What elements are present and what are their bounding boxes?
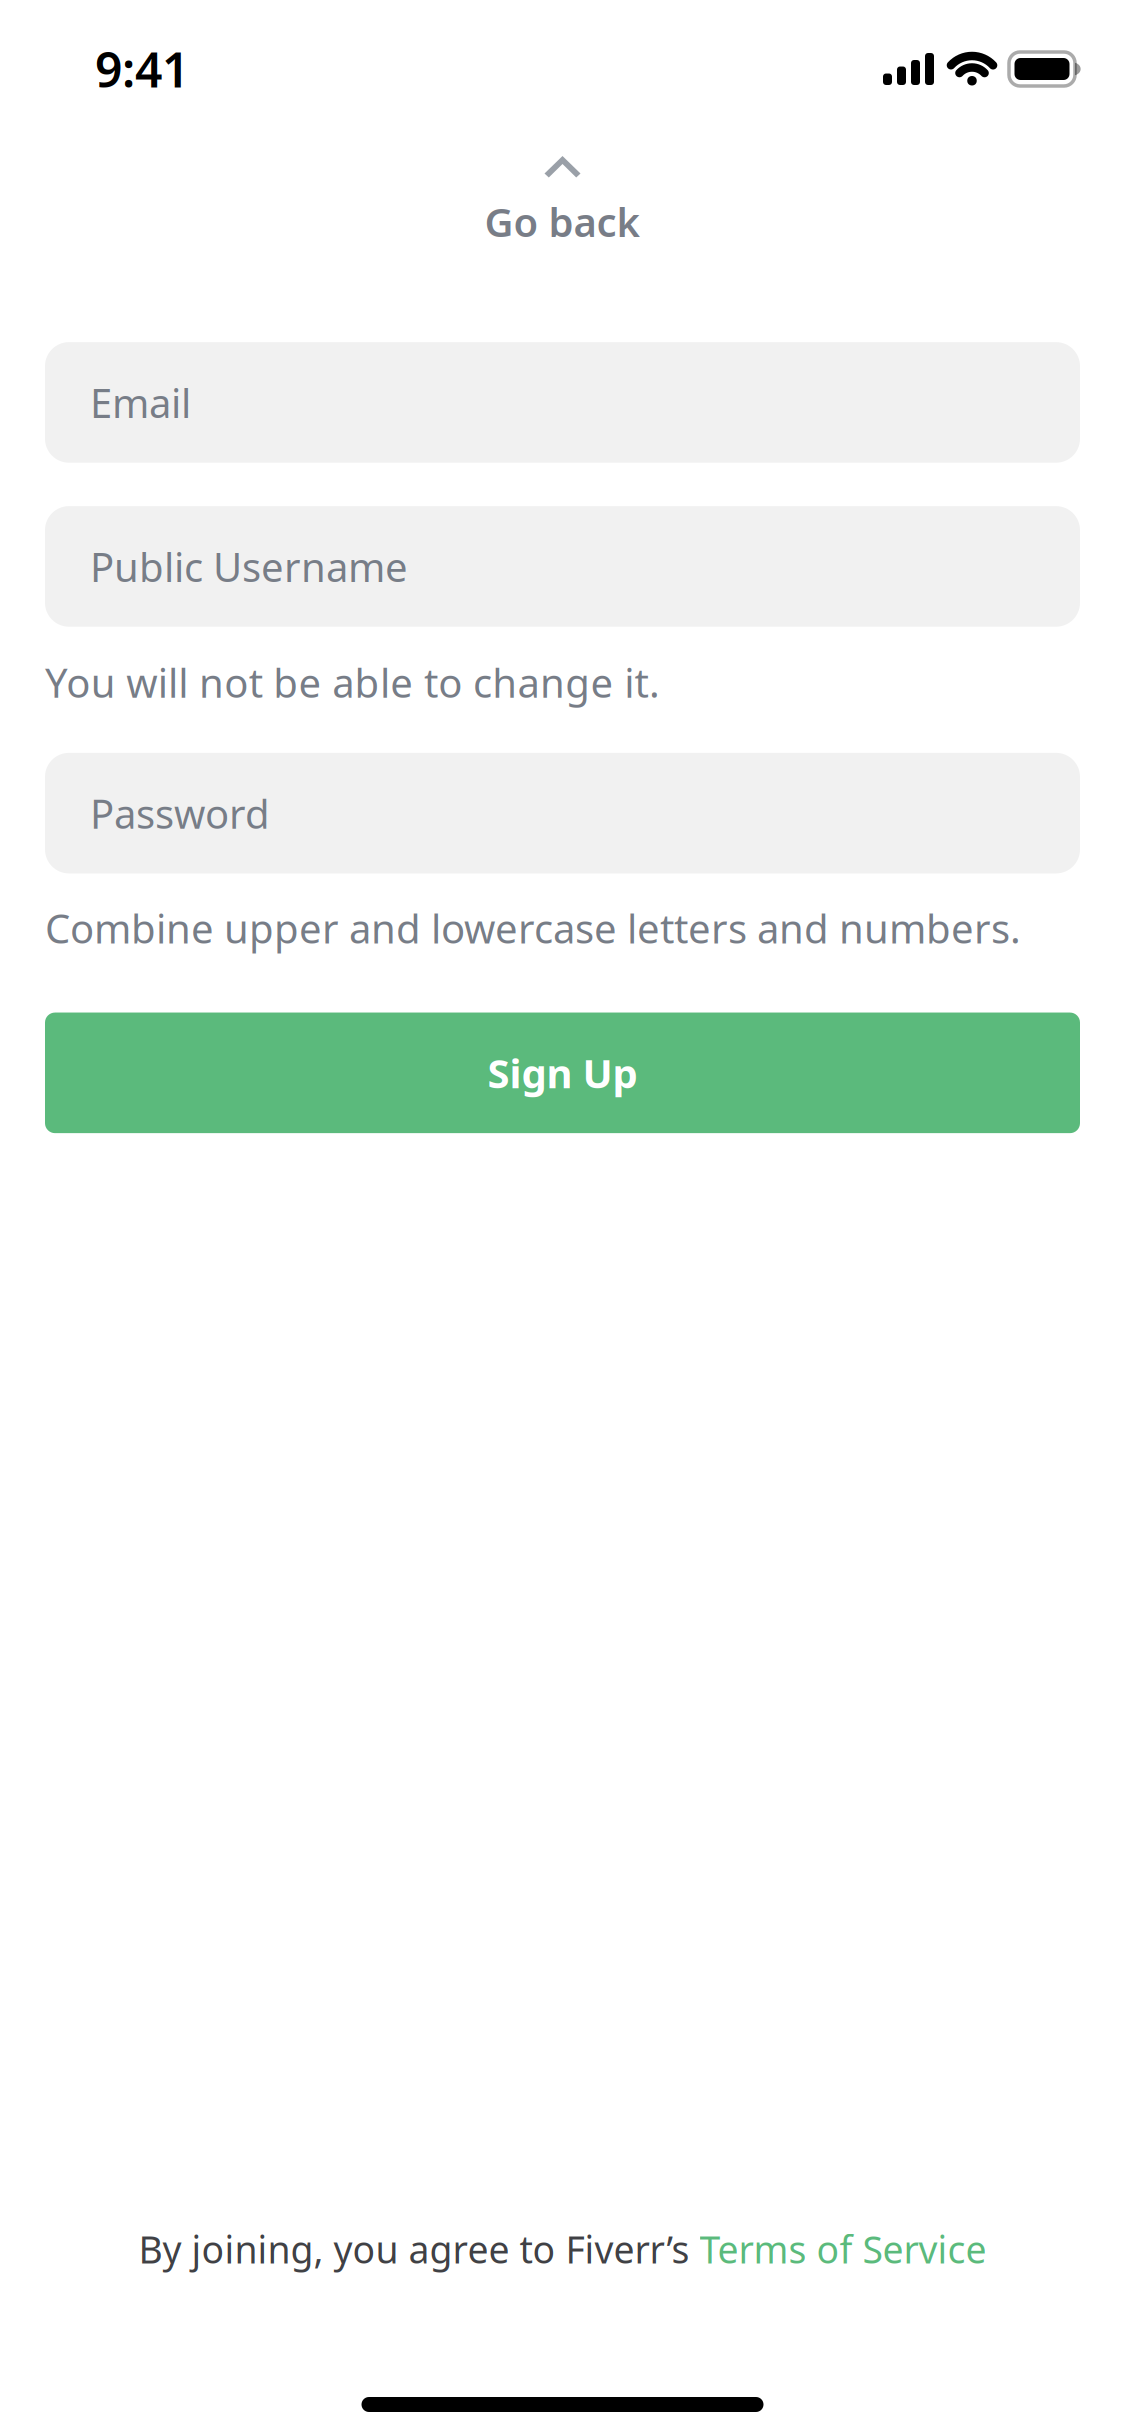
staticText: Public Username: [90, 540, 408, 593]
staticText: 9:41: [95, 37, 189, 101]
staticText: Go back: [484, 195, 640, 248]
button[interactable]: Terms of Service: [699, 2224, 986, 2274]
staticText: You will not be able to change it.: [45, 656, 660, 709]
staticText: By joining, you agree to Fiverr’s: [138, 2224, 699, 2274]
staticText: Combine upper and lowercase letters and …: [45, 901, 1021, 954]
button[interactable]: Public Username: [45, 506, 1080, 627]
staticText: Password: [90, 787, 270, 840]
button[interactable]: Go back: [0, 132, 1125, 268]
button[interactable]: Sign Up: [45, 1013, 1080, 1133]
button[interactable]: Password: [45, 753, 1080, 873]
staticText: Sign Up: [487, 1046, 637, 1099]
button[interactable]: Email: [45, 342, 1080, 463]
staticText: Terms of Service: [699, 2224, 986, 2274]
staticText: Email: [90, 376, 191, 429]
